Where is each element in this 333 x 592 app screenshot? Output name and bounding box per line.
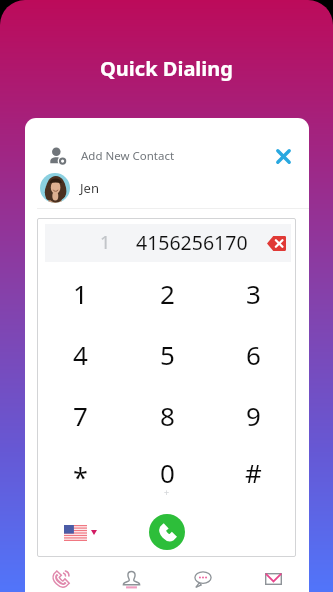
button[interactable]: 1 — [37, 263, 124, 324]
button[interactable]: 8 — [124, 385, 210, 445]
button[interactable]: 6 — [210, 324, 296, 385]
staticText: 5 — [160, 337, 175, 372]
staticText: 4156256170 — [136, 229, 248, 256]
button[interactable]: Messages — [167, 565, 238, 592]
button[interactable]: 9 — [210, 385, 296, 445]
button[interactable]: Jen — [25, 171, 309, 204]
button[interactable]: 5 — [124, 324, 210, 385]
button[interactable]: 7 — [37, 385, 124, 445]
button[interactable]: Mail — [238, 565, 309, 592]
button[interactable]: # — [210, 445, 296, 499]
staticText: Quick Dialing — [0, 55, 333, 82]
staticText: # — [245, 455, 262, 490]
button[interactable]: 4 — [37, 324, 124, 385]
staticText: Add New Contact — [81, 148, 175, 164]
staticText: 3 — [246, 276, 261, 311]
staticText: 4 — [73, 337, 88, 372]
button[interactable]: Recent calls — [25, 565, 96, 592]
button[interactable]: 3 — [210, 263, 296, 324]
staticText: 1 — [73, 276, 88, 311]
staticText: + — [164, 486, 170, 498]
staticText: 9 — [246, 398, 261, 433]
button[interactable]: Select country — [37, 499, 124, 564]
button[interactable]: * — [37, 445, 124, 499]
staticText: 1 — [100, 230, 111, 255]
button[interactable]: Add New Contact — [25, 139, 309, 172]
button[interactable]: Close — [269, 142, 297, 170]
staticText: 7 — [73, 398, 88, 433]
button[interactable]: 0 — [124, 445, 210, 499]
staticText: 0 — [160, 455, 175, 490]
staticText: 2 — [160, 276, 175, 311]
staticText: 6 — [246, 337, 261, 372]
button[interactable]: Backspace — [263, 230, 289, 256]
button[interactable]: Call — [149, 514, 185, 550]
staticText: * — [73, 459, 88, 496]
button[interactable]: Contacts — [96, 565, 167, 592]
button[interactable]: 2 — [124, 263, 210, 324]
staticText: Jen — [80, 179, 99, 197]
staticText: 8 — [160, 398, 175, 433]
